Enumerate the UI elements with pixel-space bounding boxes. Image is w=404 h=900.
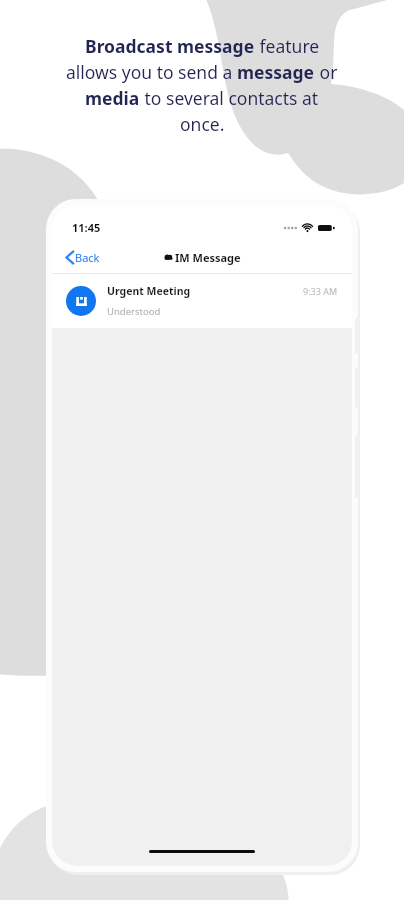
staticText: once. bbox=[180, 112, 225, 136]
staticText: Back bbox=[75, 250, 100, 265]
other: Contact avatar bbox=[66, 286, 96, 316]
staticText: Understood bbox=[107, 305, 161, 318]
staticText: allows you to send a bbox=[66, 60, 237, 84]
button[interactable]: Contact avatar bbox=[52, 274, 352, 328]
staticText: feature bbox=[255, 34, 320, 58]
staticText: to several contacts at bbox=[140, 86, 319, 110]
staticText: or bbox=[315, 60, 338, 84]
staticText: 9:33 AM bbox=[303, 285, 338, 297]
staticText: message bbox=[237, 60, 315, 84]
staticText: 11:45 bbox=[72, 220, 101, 235]
staticText: IM Message bbox=[175, 250, 241, 265]
staticText: Broadcast message bbox=[85, 34, 255, 58]
staticText: media bbox=[85, 86, 140, 110]
staticText: Urgent Meeting bbox=[107, 284, 303, 298]
button[interactable]: Back bbox=[62, 246, 104, 269]
